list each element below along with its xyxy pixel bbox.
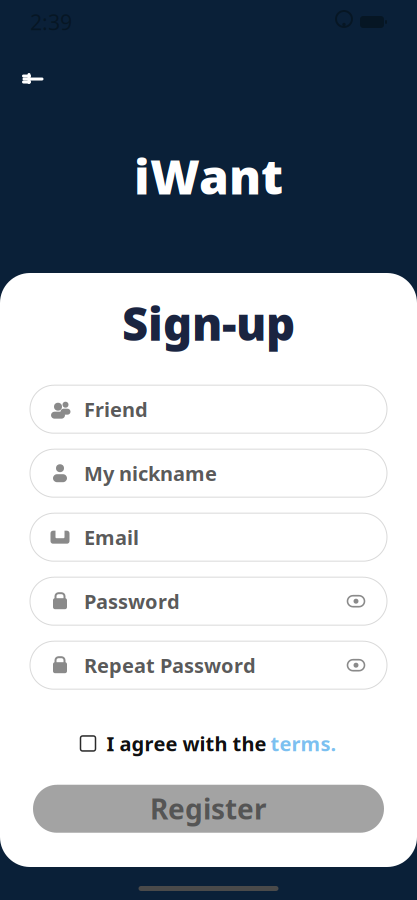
staticText: Email xyxy=(84,524,139,550)
button[interactable]: Email xyxy=(30,513,387,561)
staticText: Register xyxy=(150,790,267,827)
button[interactable]: I agree with the xyxy=(72,724,344,763)
button[interactable]: Back xyxy=(11,57,55,101)
staticText: Sign-up xyxy=(122,293,295,353)
staticText: iWant xyxy=(134,144,283,208)
button[interactable]: Register xyxy=(33,785,384,833)
staticText: terms. xyxy=(270,730,336,757)
button[interactable]: My nickname xyxy=(30,449,387,497)
staticText: I agree with the xyxy=(106,730,266,757)
staticText: Repeat Password xyxy=(84,652,256,678)
button[interactable]: Friend xyxy=(30,385,387,433)
button[interactable]: Repeat Password xyxy=(30,641,387,689)
button[interactable]: Password xyxy=(30,577,387,625)
staticText: My nickname xyxy=(84,460,217,486)
staticText: Password xyxy=(84,588,180,614)
staticText: Friend xyxy=(84,396,148,422)
staticText: 2:39 xyxy=(30,8,72,36)
